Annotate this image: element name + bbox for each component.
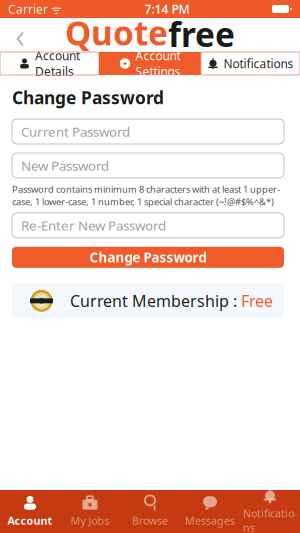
button[interactable]: Account Details xyxy=(0,52,99,75)
staticText: ᯤ xyxy=(48,1,62,17)
staticText: free xyxy=(168,12,235,56)
staticText: Notifications xyxy=(223,55,293,71)
button[interactable]: Notifications xyxy=(201,52,300,75)
staticText: 7:14 PM xyxy=(144,1,189,17)
button[interactable]: Messages xyxy=(180,490,240,533)
staticText: Current Membership : xyxy=(70,290,237,311)
staticText: Free xyxy=(237,290,273,311)
staticText: ‹ xyxy=(15,12,24,58)
staticText: Change Password xyxy=(12,86,164,109)
button[interactable]: Account Settings xyxy=(99,52,201,75)
button[interactable]: Change Password xyxy=(12,247,284,268)
staticText: Change Password xyxy=(89,248,206,266)
button[interactable]: Account xyxy=(0,490,60,533)
staticText: Carrier xyxy=(8,1,48,17)
staticText: Account Details xyxy=(35,48,80,79)
staticText: Notifications xyxy=(243,506,297,533)
staticText: Browse xyxy=(132,513,168,528)
button[interactable]: Back xyxy=(0,18,40,52)
staticText: Password contains minimum 8 characters w… xyxy=(12,183,280,208)
button[interactable]: My Jobs xyxy=(60,490,120,533)
staticText: Quote xyxy=(65,10,168,55)
staticText: New Password xyxy=(21,157,109,174)
staticText: Account xyxy=(7,513,52,528)
staticText: My Jobs xyxy=(70,513,109,528)
staticText: Re-Enter New Password xyxy=(21,216,166,234)
button[interactable]: Notifications xyxy=(240,490,300,533)
staticText: Messages xyxy=(185,513,235,528)
staticText: Account Settings xyxy=(135,48,180,79)
button[interactable]: Browse xyxy=(120,490,180,533)
staticText: Current Password xyxy=(21,123,130,140)
